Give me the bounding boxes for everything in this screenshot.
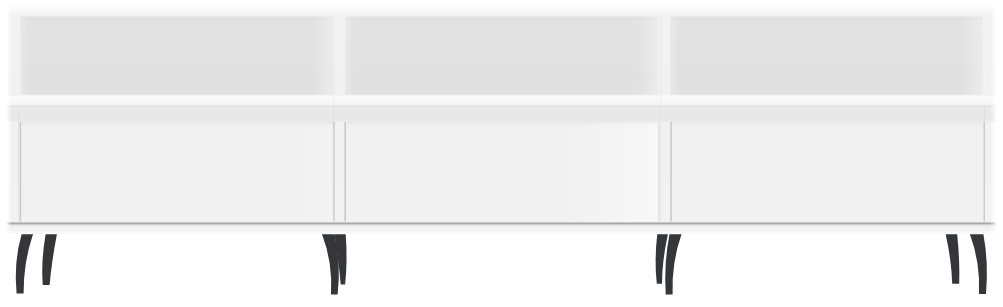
- button[interactable]: White high gloss TV cabinet: [0, 0, 1003, 307]
